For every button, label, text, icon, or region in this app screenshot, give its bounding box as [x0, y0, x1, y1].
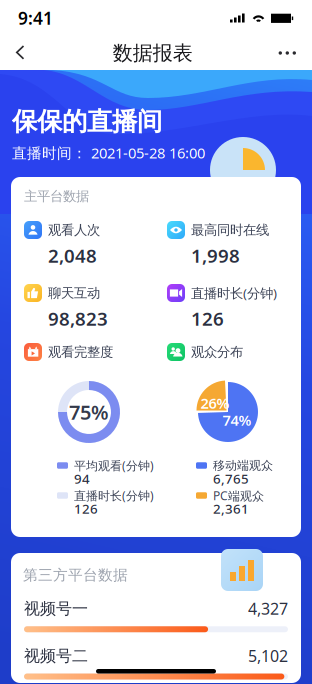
staticText: 直播时长(分钟) — [191, 284, 277, 302]
staticText: 视频号二 — [24, 646, 88, 666]
button[interactable]: Back — [8, 36, 35, 70]
staticText: 2,361 — [213, 500, 249, 517]
staticText: 1,998 — [191, 243, 240, 268]
staticText: 2,048 — [48, 243, 97, 268]
staticText: 第三方平台数据 — [23, 566, 128, 584]
staticText: 数据报表 — [113, 41, 193, 65]
staticText: 74% — [222, 410, 251, 430]
button[interactable]: More — [271, 38, 304, 68]
staticText: 直播时间： 2021-05-28 16:00 — [12, 143, 205, 163]
staticText: 9:41 — [18, 6, 53, 29]
staticText: 观看人次 — [48, 222, 100, 238]
staticText: 保保的直播间 — [12, 106, 162, 137]
staticText: 平均观看(分钟) — [74, 457, 154, 473]
staticText: 4,327 — [248, 598, 288, 619]
staticText: 主平台数据 — [24, 188, 89, 204]
staticText: 6,765 — [213, 470, 249, 487]
staticText: 最高同时在线 — [191, 222, 269, 238]
staticText: PC端观众 — [213, 487, 264, 503]
staticText: 观看完整度 — [48, 344, 113, 360]
staticText: 移动端观众 — [213, 458, 273, 473]
staticText: 94 — [74, 470, 90, 487]
staticText: 视频号一 — [24, 599, 88, 618]
staticText: 聊天互动 — [48, 285, 100, 301]
staticText: 126 — [191, 306, 224, 331]
staticText: 126 — [74, 500, 98, 517]
staticText: 5,102 — [248, 645, 288, 666]
staticText: 26% — [200, 393, 229, 413]
staticText: 直播时长(分钟) — [74, 487, 154, 503]
staticText: 75% — [69, 399, 109, 425]
staticText: 98,823 — [48, 306, 108, 331]
staticText: 观众分布 — [191, 344, 243, 360]
